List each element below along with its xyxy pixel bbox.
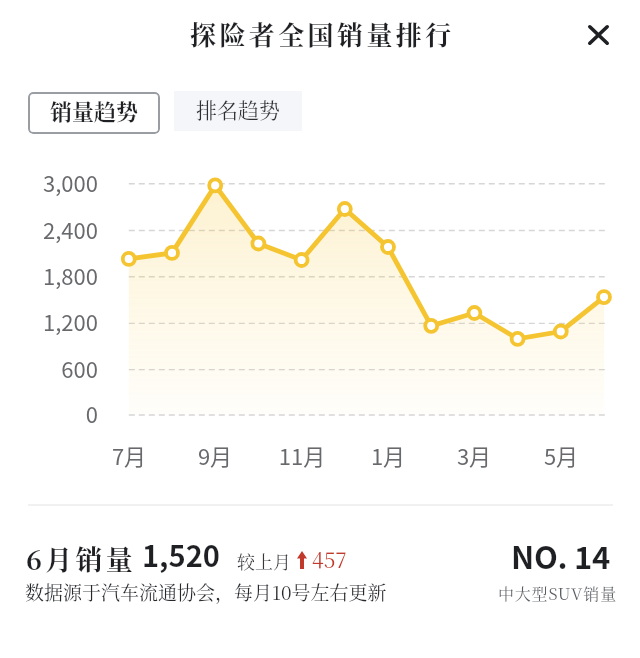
button[interactable]: Close (577, 14, 619, 56)
staticText: 11月 (262, 439, 342, 471)
staticText: 探险者全国销量排行 (190, 15, 455, 52)
staticText: 457 (312, 544, 347, 574)
staticText: 1,520 (142, 533, 220, 575)
staticText: 600 (24, 352, 98, 384)
staticText: NO. 14 (511, 533, 610, 578)
staticText: 中大型SUV销量 (498, 582, 617, 605)
staticText: 1月 (348, 439, 428, 471)
staticText: 较上月 (237, 548, 291, 574)
staticText: 销量趋势 (50, 95, 139, 127)
staticText: 3月 (434, 439, 514, 471)
staticText: 1,800 (24, 259, 98, 291)
staticText: 3,000 (24, 166, 98, 198)
button[interactable]: 销量趋势 (28, 92, 160, 134)
staticText: 1,200 (24, 305, 98, 337)
staticText: 7月 (89, 439, 169, 471)
button[interactable]: 排名趋势 (174, 91, 302, 131)
staticText: 5月 (521, 439, 601, 471)
staticText: 9月 (175, 439, 255, 471)
staticText: 0 (24, 397, 98, 429)
staticText: 2,400 (24, 213, 98, 245)
staticText: 6月销量 (26, 539, 136, 578)
staticText: 数据源于汽车流通协会，每月10号左右更新 (25, 578, 387, 605)
staticText: 排名趋势 (196, 94, 280, 124)
